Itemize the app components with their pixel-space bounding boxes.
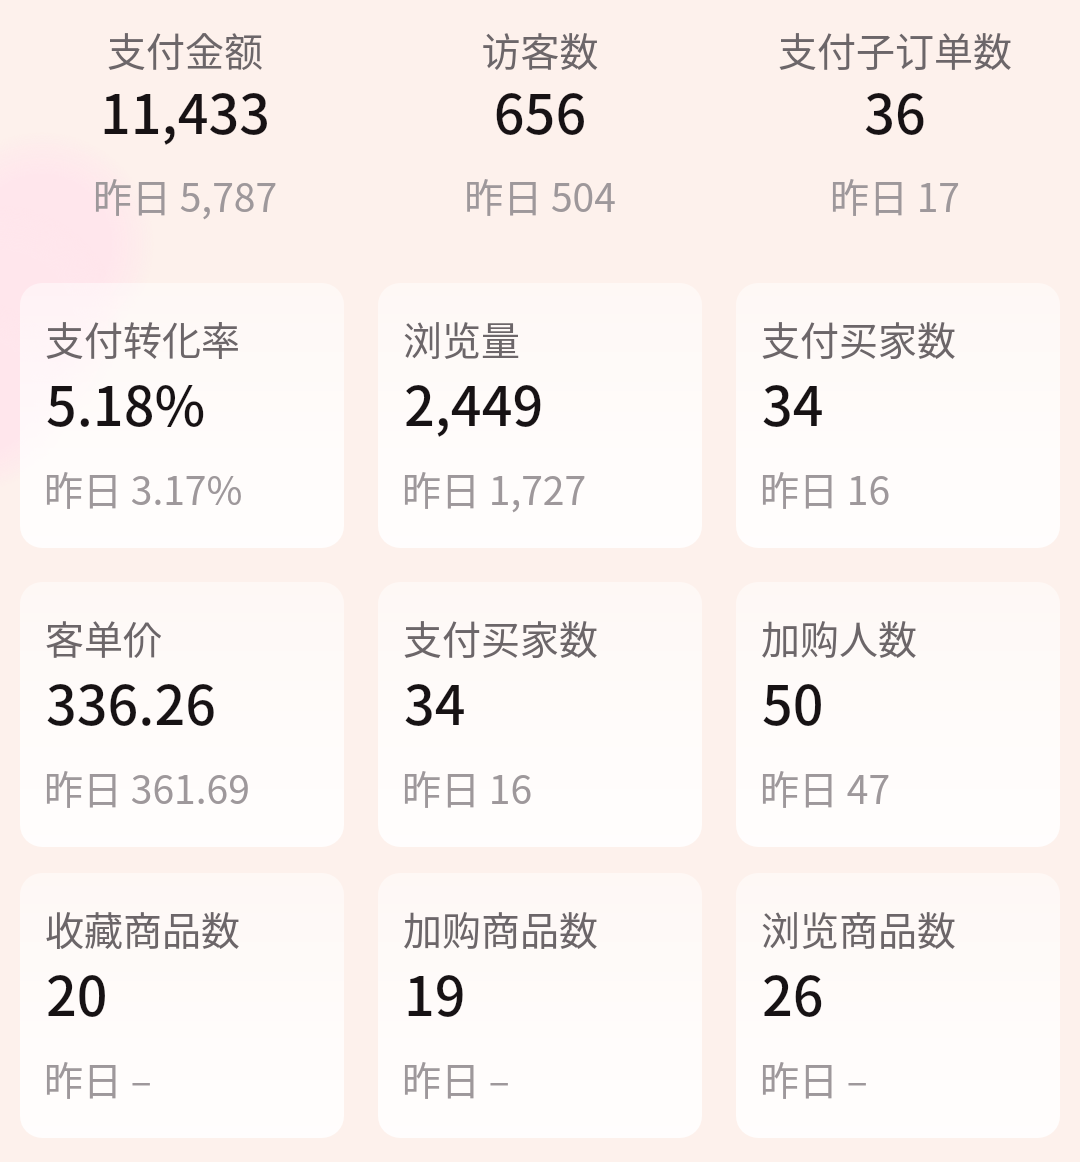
button[interactable]: 支付转化率 [20,283,344,548]
staticText: 支付金额 [5,21,365,77]
button[interactable]: 收藏商品数 [20,873,344,1138]
button[interactable]: 支付金额 [5,0,365,250]
staticText: 客单价 [45,609,163,665]
staticText: 34 [404,662,466,740]
staticText: 支付子订单数 [715,21,1075,77]
staticText: 昨日 5,787 [5,167,365,223]
button[interactable]: 访客数 [360,0,720,250]
button[interactable]: 加购商品数 [378,873,702,1138]
staticText: 11,433 [5,71,365,149]
staticText: 昨日 17 [715,167,1075,223]
staticText: 加购人数 [761,609,918,665]
staticText: 昨日 – [760,1050,868,1106]
staticText: 浏览商品数 [761,900,957,956]
button[interactable]: 支付买家数 [378,582,702,847]
staticText: 昨日 – [44,1050,152,1106]
staticText: 34 [762,363,824,441]
staticText: 昨日 – [402,1050,510,1106]
staticText: 支付买家数 [761,310,957,366]
button[interactable]: 支付买家数 [736,283,1060,548]
staticText: 支付转化率 [45,310,241,366]
staticText: 昨日 3.17% [44,460,243,516]
staticText: 昨日 16 [402,759,533,815]
button[interactable]: 浏览量 [378,283,702,548]
staticText: 19 [404,953,466,1031]
staticText: 26 [762,953,824,1031]
button[interactable]: 支付子订单数 [715,0,1075,250]
staticText: 访客数 [360,21,720,77]
staticText: 昨日 16 [760,460,891,516]
button[interactable]: 客单价 [20,582,344,847]
staticText: 50 [762,662,824,740]
staticText: 收藏商品数 [45,900,241,956]
staticText: 浏览量 [403,310,521,366]
staticText: 昨日 361.69 [44,759,250,815]
staticText: 20 [46,953,108,1031]
staticText: 支付买家数 [403,609,599,665]
staticText: 36 [715,71,1075,149]
staticText: 5.18% [46,363,206,441]
staticText: 昨日 504 [360,167,720,223]
staticText: 加购商品数 [403,900,599,956]
staticText: 2,449 [404,363,544,441]
staticText: 昨日 1,727 [402,460,587,516]
staticText: 昨日 47 [760,759,891,815]
button[interactable]: 浏览商品数 [736,873,1060,1138]
staticText: 336.26 [46,662,216,740]
button[interactable]: 加购人数 [736,582,1060,847]
staticText: 656 [360,71,720,149]
